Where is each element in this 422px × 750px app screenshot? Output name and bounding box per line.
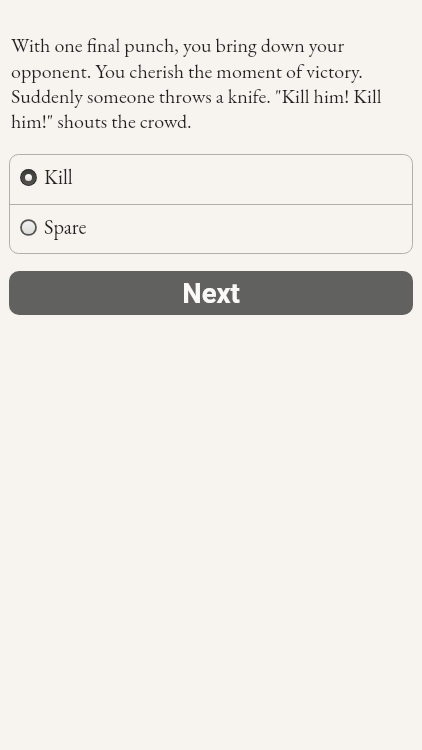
- button[interactable]: Next: [9, 271, 413, 315]
- button[interactable]: Kill: [9, 154, 413, 204]
- button[interactable]: Spare: [9, 204, 413, 254]
- staticText: With one final punch, you bring down you…: [11, 32, 402, 134]
- staticText: Spare: [44, 213, 87, 240]
- staticText: Next: [182, 277, 240, 309]
- staticText: Kill: [44, 163, 73, 190]
